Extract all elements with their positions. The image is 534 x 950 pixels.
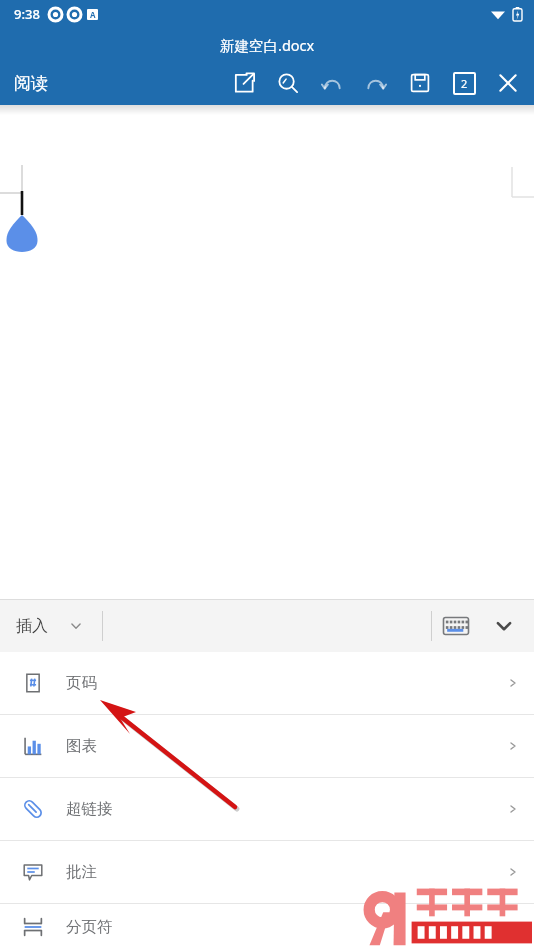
button[interactable]: Collapse xyxy=(480,602,528,650)
button[interactable]: Export xyxy=(222,61,266,105)
button[interactable]: 页码 xyxy=(0,652,534,714)
staticText: 超链接 xyxy=(66,799,113,819)
staticText: A xyxy=(90,9,96,20)
button[interactable]: 阅读 xyxy=(8,67,54,100)
button[interactable]: 图表 xyxy=(0,715,534,777)
button[interactable]: Close xyxy=(486,61,530,105)
staticText: 新建空白.docx xyxy=(220,35,315,55)
staticText: 图表 xyxy=(66,736,97,756)
staticText: 分页符 xyxy=(66,917,113,937)
button[interactable]: 插入 xyxy=(0,608,92,644)
button[interactable]: 批注 xyxy=(0,841,534,903)
button[interactable]: Keyboard xyxy=(432,602,480,650)
staticText: 2 xyxy=(461,76,468,91)
staticText: 阅读 xyxy=(14,73,48,94)
staticText: 批注 xyxy=(66,862,97,882)
button[interactable]: Save xyxy=(398,61,442,105)
button[interactable]: 分页符 xyxy=(0,904,534,950)
staticText: 9:38 xyxy=(14,5,40,23)
staticText: 页码 xyxy=(66,673,97,693)
button[interactable]: Search xyxy=(266,61,310,105)
staticText: 插入 xyxy=(16,616,48,636)
button[interactable]: 超链接 xyxy=(0,778,534,840)
button[interactable]: Pages xyxy=(442,61,486,105)
button[interactable]: Undo xyxy=(310,61,354,105)
button[interactable]: Redo xyxy=(354,61,398,105)
